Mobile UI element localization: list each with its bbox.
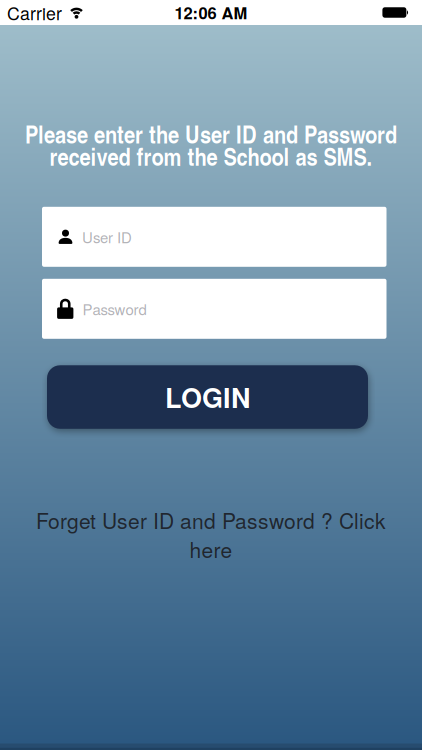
button[interactable]: LOGIN bbox=[47, 365, 368, 429]
staticText: 12:06 AM bbox=[174, 1, 247, 24]
staticText: received from the School as SMS. bbox=[49, 139, 372, 173]
button[interactable]: Password bbox=[42, 279, 386, 339]
staticText: here bbox=[189, 534, 232, 564]
staticText: User ID bbox=[82, 226, 132, 247]
button[interactable]: Forget User ID and Password ? Click bbox=[36, 505, 386, 564]
staticText: LOGIN bbox=[165, 378, 250, 416]
staticText: Forget User ID and Password ? Click bbox=[36, 505, 386, 535]
button[interactable]: User ID bbox=[42, 207, 386, 267]
staticText: Password bbox=[82, 298, 146, 319]
staticText: Please enter the User ID and Password bbox=[25, 116, 397, 151]
staticText: Carrier bbox=[7, 0, 62, 25]
